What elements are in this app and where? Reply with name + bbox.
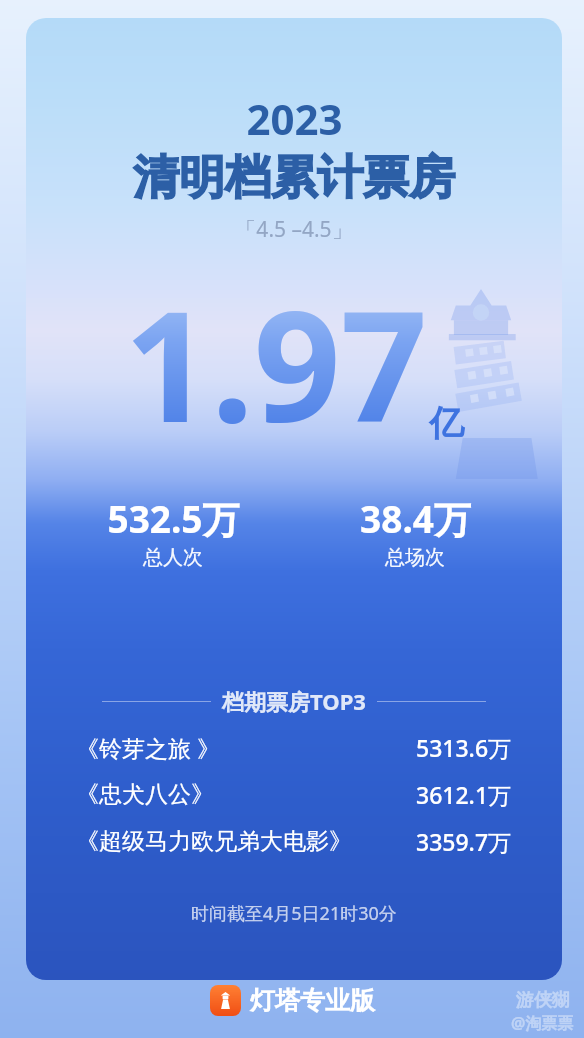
button[interactable]: 《超级马力欧兄弟大电影》	[76, 826, 512, 857]
staticText: 游侠猢	[516, 989, 570, 1012]
staticText: 档期票房TOP3	[222, 686, 366, 716]
staticText: 时间截至4月5日21时30分	[191, 901, 397, 926]
staticText: 「4.5 –4.5」	[235, 215, 353, 244]
staticText: 2023	[246, 90, 343, 147]
button[interactable]: 灯塔专业版	[206, 983, 379, 1018]
other: 灯塔专业版	[210, 985, 241, 1016]
button[interactable]: 《忠犬八公》	[76, 779, 512, 810]
button[interactable]: 532.5万	[52, 493, 294, 570]
staticText: 《忠犬八公》	[76, 780, 214, 809]
staticText: 《铃芽之旅 》	[76, 732, 220, 763]
staticText: 《超级马力欧兄弟大电影》	[76, 827, 352, 856]
staticText: 清明档累计票房	[133, 149, 455, 207]
staticText: 38.4万	[360, 493, 471, 544]
staticText: 亿	[429, 401, 464, 445]
staticText: 1.97	[124, 260, 428, 467]
button[interactable]: 38.4万	[294, 493, 536, 570]
staticText: 总人次	[143, 545, 203, 570]
staticText: 3359.7万	[416, 826, 512, 857]
button[interactable]: 《铃芽之旅 》	[76, 732, 512, 763]
staticText: 3612.1万	[416, 779, 512, 810]
staticText: @淘票票	[511, 1012, 574, 1034]
staticText: 5313.6万	[416, 732, 512, 763]
staticText: 灯塔专业版	[250, 985, 375, 1016]
staticText: 总场次	[385, 545, 445, 570]
staticText: 532.5万	[107, 493, 240, 544]
